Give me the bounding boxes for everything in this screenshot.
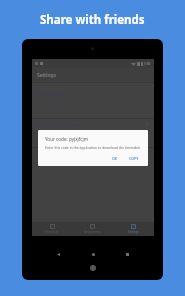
staticText: 1:56 <box>144 62 151 66</box>
button[interactable]: Colour <box>32 159 154 170</box>
staticText: COPY <box>129 156 139 161</box>
staticText: Settings <box>128 230 139 234</box>
staticText: 2 <box>146 122 148 127</box>
button[interactable]: Recents <box>125 252 129 256</box>
staticText: Number of recurring weeks <box>38 122 88 127</box>
button[interactable]: Back <box>56 252 60 256</box>
staticText: Current week <box>38 133 62 138</box>
button[interactable]: Settings <box>113 222 154 236</box>
button[interactable]: Timetable <box>32 222 72 236</box>
staticText: Colour <box>38 162 50 167</box>
staticText: Receive timetable <box>38 103 70 108</box>
button[interactable]: COPY <box>125 154 143 163</box>
staticText: OK <box>112 156 118 161</box>
button[interactable]: Current week <box>32 130 154 141</box>
staticText: Timetable <box>45 230 59 234</box>
staticText: Assignments <box>84 230 101 234</box>
staticText: Share timetable <box>38 92 67 97</box>
button[interactable]: Home button <box>90 265 96 271</box>
staticText: Your code: pyjxjfcjm <box>45 136 89 142</box>
staticText: Share with friends <box>40 12 145 28</box>
button[interactable]: Theme <box>32 148 154 159</box>
button[interactable]: OK <box>108 154 122 163</box>
staticText: Settings <box>37 72 57 79</box>
button[interactable]: Home <box>91 252 95 256</box>
staticText: Enter this code in the application to do… <box>45 145 142 150</box>
button[interactable]: Assignments <box>72 222 113 236</box>
